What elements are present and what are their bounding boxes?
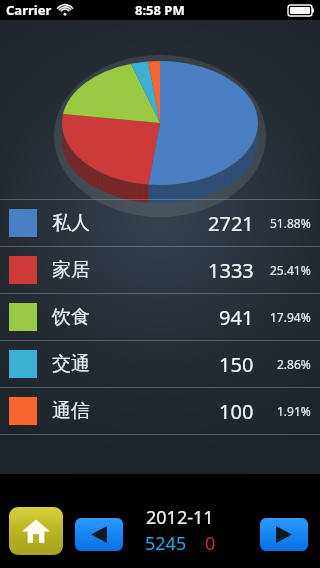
staticText: 150 [219, 351, 254, 378]
staticText: 1.91% [277, 403, 311, 419]
staticText: 1333 [208, 257, 254, 284]
button[interactable] [0, 435, 320, 480]
staticText: 交通 [52, 352, 90, 376]
staticText: 51.88% [270, 215, 311, 231]
button[interactable]: Home [9, 507, 63, 555]
button[interactable]: 私人 [0, 200, 320, 246]
button[interactable]: 交通 [0, 341, 320, 387]
button[interactable]: 家居 [0, 247, 320, 293]
staticText: 家居 [52, 258, 90, 282]
staticText: 私人 [52, 211, 90, 235]
button[interactable]: 2012-11 [135, 505, 225, 556]
button[interactable]: 饮食 [0, 294, 320, 340]
staticText: 100 [219, 398, 254, 425]
button[interactable]: Next month [260, 518, 308, 551]
staticText: 饮食 [52, 305, 90, 329]
staticText: 5245 [145, 531, 187, 556]
staticText: 2012-11 [146, 505, 214, 530]
staticText: 2721 [208, 210, 254, 237]
staticText: 2.86% [277, 356, 311, 372]
staticText: 8:58 PM [135, 1, 185, 19]
staticText: Carrier [6, 1, 52, 19]
staticText: 941 [219, 304, 254, 331]
staticText: 0 [205, 531, 216, 556]
staticText: 25.41% [270, 262, 311, 278]
button[interactable]: 通信 [0, 388, 320, 434]
button[interactable]: Previous month [75, 518, 123, 551]
staticText: 通信 [52, 399, 90, 423]
staticText: 17.94% [270, 309, 311, 325]
